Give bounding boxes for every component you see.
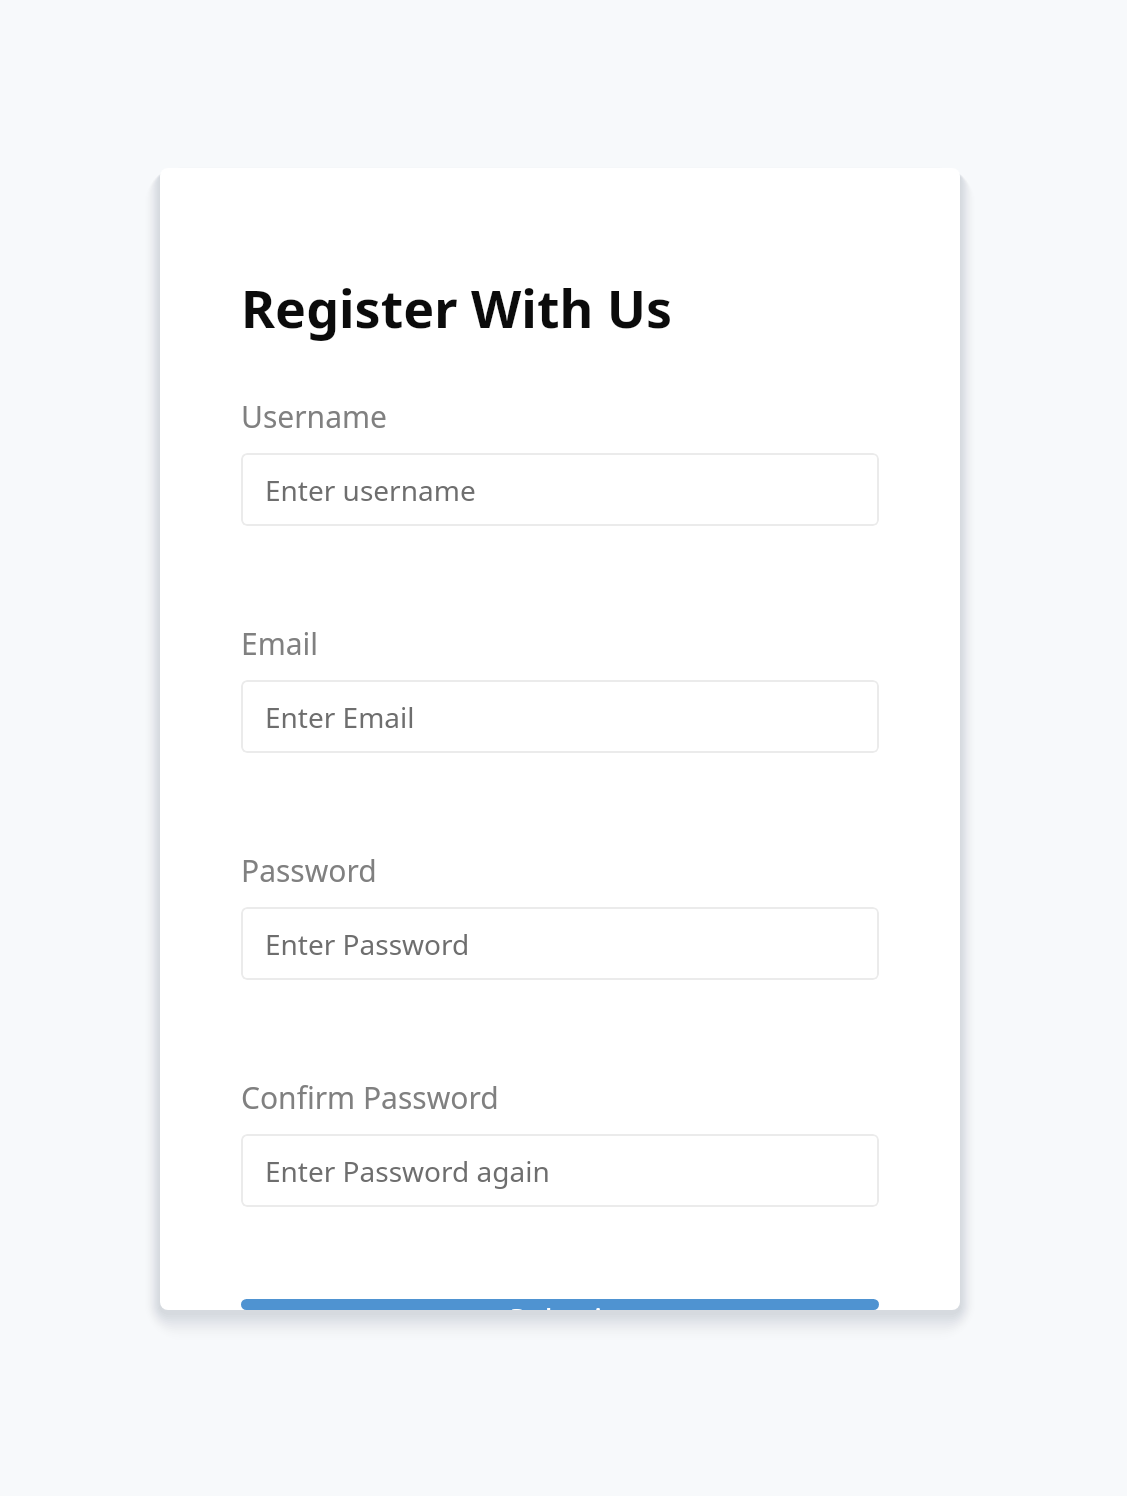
- staticText: Confirm Password: [241, 1077, 499, 1118]
- staticText: Password: [241, 850, 377, 891]
- staticText: Enter Password: [265, 925, 470, 963]
- staticText: Email: [241, 623, 319, 664]
- staticText: Register With Us: [241, 272, 673, 343]
- staticText: Enter Password again: [265, 1152, 550, 1190]
- button[interactable]: Submit: [241, 1299, 879, 1310]
- staticText: Submit: [507, 1299, 614, 1310]
- button[interactable]: Enter username: [241, 453, 879, 526]
- button[interactable]: Enter Email: [241, 680, 879, 753]
- button[interactable]: Enter Password: [241, 907, 879, 980]
- staticText: Enter Email: [265, 698, 415, 736]
- staticText: Enter username: [265, 471, 476, 509]
- button[interactable]: Enter Password again: [241, 1134, 879, 1207]
- staticText: Username: [241, 396, 387, 437]
